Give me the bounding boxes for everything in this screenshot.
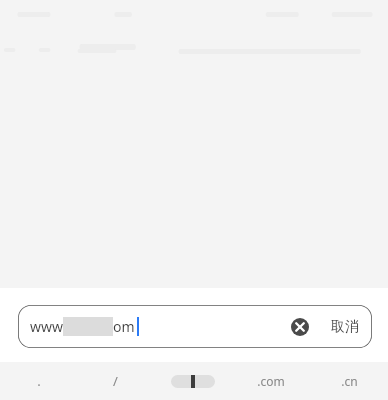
staticText: www <box>30 317 64 336</box>
button[interactable]: / <box>77 362 154 400</box>
button[interactable]: Clear text <box>287 314 313 340</box>
staticText: . <box>37 372 41 390</box>
staticText: / <box>113 372 118 390</box>
staticText: 取消 <box>331 318 359 336</box>
button[interactable]: .cn <box>310 362 388 400</box>
staticText: om <box>113 317 135 336</box>
button[interactable]: .com <box>232 362 310 400</box>
staticText: .cn <box>341 373 358 389</box>
staticText: .com <box>257 373 285 389</box>
button[interactable]: 取消 <box>322 305 368 348</box>
button[interactable]: www <box>18 305 372 348</box>
button[interactable]: Space <box>154 362 232 400</box>
